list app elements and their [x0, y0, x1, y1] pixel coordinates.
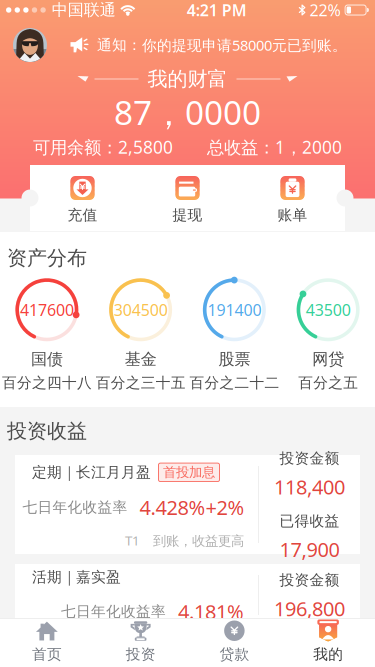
staticText: 4:21 PM [187, 0, 247, 21]
button[interactable]: 提现 [135, 165, 240, 231]
staticText: 你的提现申请58000元已到账。 [142, 35, 347, 55]
staticText: 投资金额 [279, 571, 339, 589]
button[interactable]: 191400 [187, 278, 281, 400]
staticText: 百分之四十八 [2, 374, 92, 392]
staticText: T1 到账，收益更高 [125, 532, 244, 549]
staticText: 我的财富 [147, 67, 227, 91]
staticText: 国债 [31, 349, 63, 369]
staticText: 资产分布 [7, 246, 87, 270]
button[interactable]: 我的 [281, 618, 375, 667]
staticText: 118,400 [274, 473, 345, 500]
staticText: 活期｜嘉实盈 [32, 568, 121, 586]
staticText: 七日年化收益率 [61, 602, 166, 620]
button[interactable]: 304500 [94, 278, 188, 400]
staticText: 股票 [218, 349, 250, 369]
staticText: 贷款 [219, 645, 249, 663]
staticText: 投资 [126, 645, 156, 663]
staticText: 可用余额：2,5800 [33, 135, 173, 158]
button[interactable]: 投资 [94, 618, 188, 667]
staticText: 总收益：1，2000 [207, 135, 342, 158]
staticText: 百分之三十五 [96, 374, 186, 392]
staticText: 4.181% [178, 598, 244, 625]
button[interactable]: 通知： [0, 20, 375, 70]
staticText: 191400 [207, 299, 261, 320]
staticText: 百分之五 [298, 374, 358, 392]
staticText: 43500 [306, 299, 351, 320]
staticText: 网贷 [312, 349, 344, 369]
staticText: 我的 [313, 645, 343, 663]
staticText: 定期｜长江月月盈 [32, 463, 151, 481]
staticText: 首页 [32, 645, 62, 663]
staticText: 通知： [97, 36, 142, 54]
staticText: 基金 [125, 349, 157, 369]
staticText: 417600 [20, 299, 74, 320]
button[interactable]: 定期｜长江月月盈 [0, 455, 375, 554]
staticText: 七日年化收益率 [22, 498, 127, 516]
button[interactable]: 43500 [281, 278, 375, 400]
staticText: 账单 [277, 206, 307, 224]
button[interactable]: 417600 [0, 278, 94, 400]
staticText: 充值 [67, 206, 97, 224]
button[interactable]: 首页 [0, 618, 94, 667]
staticText: 首投加息 [163, 464, 215, 480]
staticText: 4.428%+2% [139, 494, 244, 521]
staticText: 投资金额 [279, 449, 339, 467]
staticText: 196,800 [274, 595, 345, 622]
staticText: 已得收益 [279, 512, 339, 530]
staticText: 22% [310, 0, 341, 21]
staticText: 投资收益 [7, 419, 87, 443]
staticText: 百分之二十二 [189, 374, 279, 392]
staticText: 304500 [114, 299, 168, 320]
staticText: 提现 [172, 206, 202, 224]
staticText: 17,900 [279, 536, 339, 563]
button[interactable]: 活期｜嘉实盈 [0, 564, 375, 626]
button[interactable]: 充值 [30, 165, 135, 231]
button[interactable]: 贷款 [187, 618, 281, 667]
button[interactable]: 账单 [240, 165, 345, 231]
staticText: 中国联通 [52, 0, 116, 20]
staticText: 87，0000 [114, 90, 261, 134]
